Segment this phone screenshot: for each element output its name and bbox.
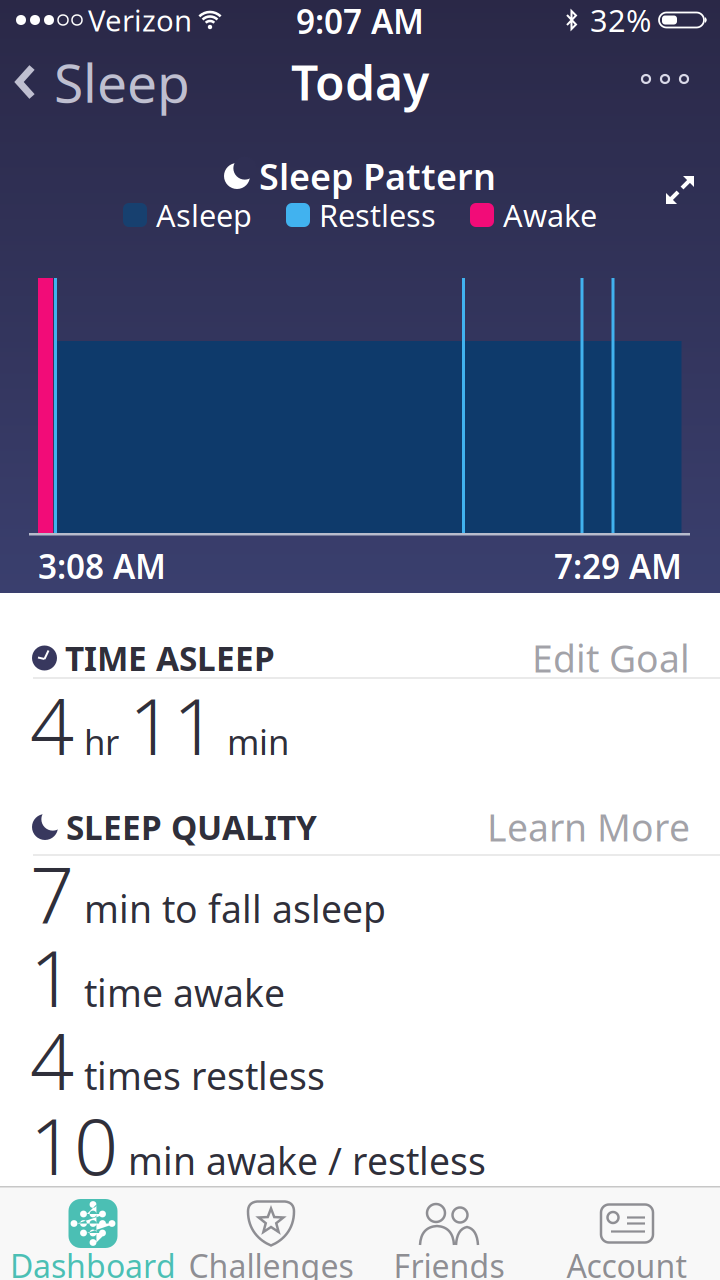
staticText: Edit Goal	[532, 633, 690, 683]
staticText: Asleep	[156, 195, 252, 235]
button[interactable]: Challenges	[182, 1186, 360, 1280]
button[interactable]: Edit Goal	[532, 633, 690, 683]
staticText: Challenges	[188, 1244, 353, 1280]
staticText: 10	[30, 1094, 118, 1196]
staticText: Dashboard	[10, 1244, 176, 1280]
staticText: Today	[291, 50, 429, 114]
staticText: TIME ASLEEP	[65, 636, 275, 680]
staticText: SLEEP QUALITY	[66, 805, 317, 849]
staticText: Learn More	[487, 802, 690, 852]
button[interactable]: Back	[16, 47, 190, 117]
button[interactable]: Dashboard	[4, 1186, 182, 1280]
staticText: 7:29 AM	[554, 544, 682, 588]
staticText: 4	[30, 1009, 74, 1111]
button[interactable]: Expand chart	[658, 168, 702, 212]
staticText: 9:07 AM	[296, 0, 424, 43]
staticText: min to fall asleep	[84, 884, 386, 933]
staticText: 7	[30, 842, 74, 944]
staticText: 1	[30, 926, 74, 1028]
staticText: 4	[30, 674, 74, 776]
staticText: times restless	[84, 1051, 325, 1100]
button[interactable]: Account	[538, 1186, 716, 1280]
staticText: min	[227, 718, 289, 764]
staticText: Restless	[319, 195, 436, 235]
staticText: min awake / restless	[128, 1136, 486, 1185]
staticText: Friends	[393, 1244, 504, 1280]
staticText: time awake	[84, 968, 285, 1017]
staticText: hr	[84, 718, 119, 764]
staticText: 32%	[590, 0, 651, 40]
staticText: Verizon	[88, 0, 192, 39]
staticText: Sleep	[54, 47, 190, 117]
button[interactable]: Learn More	[487, 802, 690, 852]
staticText: 3:08 AM	[38, 544, 166, 588]
staticText: Sleep Pattern	[259, 152, 496, 200]
staticText: Account	[566, 1244, 687, 1280]
staticText: Awake	[503, 195, 597, 235]
button[interactable]: More options	[625, 57, 705, 101]
staticText: 11	[129, 674, 217, 776]
button[interactable]: Friends	[360, 1186, 538, 1280]
